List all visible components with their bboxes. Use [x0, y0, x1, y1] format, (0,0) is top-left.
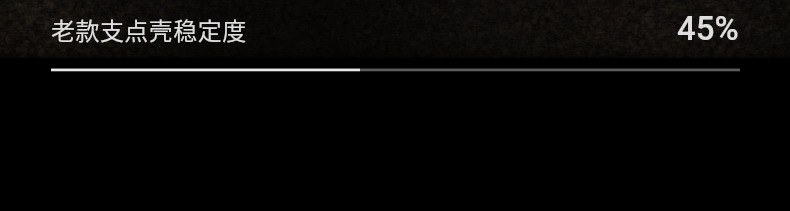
- button[interactable]: 老款支点壳稳定度: [0, 0, 790, 75]
- staticText: 45%: [677, 9, 739, 48]
- staticText: 老款支点壳稳定度: [51, 12, 247, 47]
- button[interactable]: Stability 45 percent: [45, 62, 746, 78]
